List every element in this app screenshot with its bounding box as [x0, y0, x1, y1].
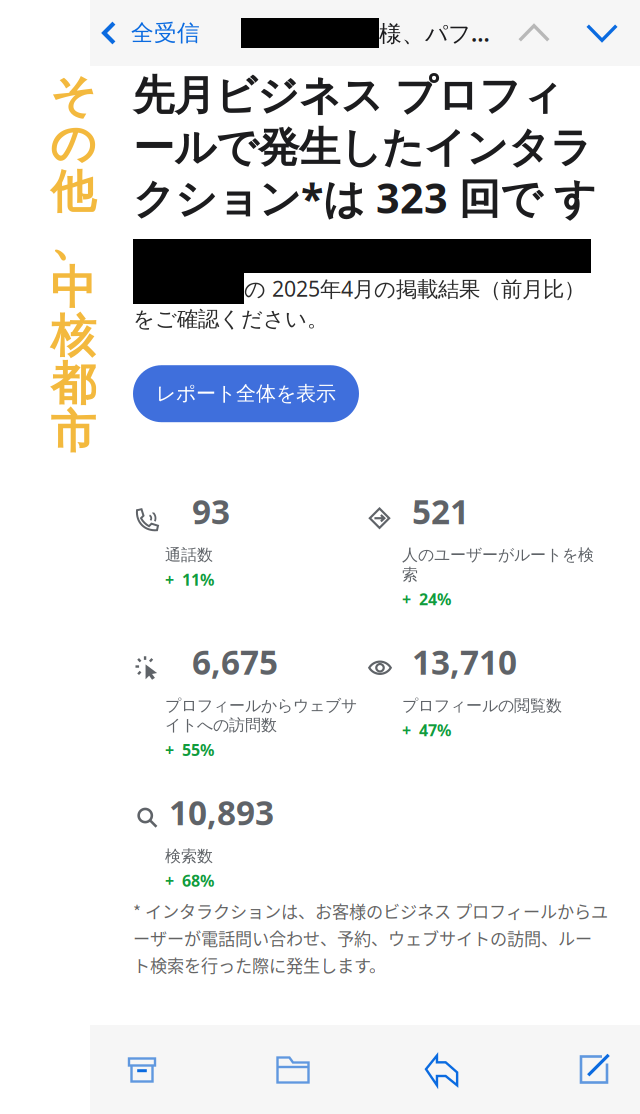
staticText: + 68% — [165, 870, 214, 891]
button[interactable]: 移動 — [255, 1025, 331, 1114]
staticText: 市 — [50, 404, 95, 460]
staticText: 全受信 — [131, 19, 200, 47]
staticText: + 47% — [402, 719, 451, 741]
staticText: 、 — [50, 212, 95, 268]
button[interactable]: アーカイブ — [104, 1025, 180, 1114]
staticText: 他 — [50, 164, 95, 220]
button[interactable]: 次のメール — [571, 0, 633, 66]
staticText: + 55% — [165, 739, 214, 760]
staticText: プロフィールの閲覧数 — [402, 696, 562, 715]
button[interactable]: レポート全体を表示 — [133, 365, 359, 422]
button[interactable]: 全受信 — [90, 0, 210, 66]
staticText: をご確認ください。 — [133, 306, 328, 332]
staticText: ーザーが電話問い合わせ、予約、ウェブサイトの訪問、ルー — [133, 925, 592, 950]
staticText: 都 — [50, 356, 95, 412]
button[interactable]: 新規メール — [556, 1025, 632, 1114]
staticText: ールで発生したインタラ — [133, 122, 592, 173]
staticText: レポート全体を表示 — [156, 381, 336, 406]
staticText: 通話数 — [165, 545, 213, 565]
staticText: 6,675 — [192, 640, 278, 684]
staticText: 核 — [50, 308, 95, 364]
staticText: 検索数 — [165, 846, 213, 866]
staticText: クション*は 323 回で す — [133, 170, 596, 225]
staticText: プロフィールからウェブサイトへの訪問数 — [165, 696, 357, 735]
staticText: 様、パフ… — [379, 18, 490, 48]
staticText: 中 — [50, 260, 95, 316]
button[interactable]: 返信 — [404, 1025, 480, 1114]
staticText: 13,710 — [412, 640, 517, 684]
staticText: * インタラクションは、お客様のビジネス プロフィールからユ — [133, 898, 608, 923]
staticText: 93 — [192, 489, 230, 533]
staticText: 人のユーザーがルートを検索 — [402, 545, 594, 584]
staticText: そ — [50, 68, 96, 124]
staticText: の — [50, 116, 96, 172]
staticText: + 11% — [165, 569, 214, 590]
staticText: の 2025年4月の掲載結果（前月比） — [244, 274, 585, 303]
staticText: 521 — [412, 489, 469, 533]
button[interactable]: 前のメール — [503, 0, 565, 66]
staticText: 10,893 — [169, 790, 274, 834]
staticText: 先月ビジネス プロフィ — [133, 70, 563, 121]
staticText: + 24% — [402, 588, 451, 610]
staticText: ト検索を行った際に発生します。 — [133, 952, 386, 977]
